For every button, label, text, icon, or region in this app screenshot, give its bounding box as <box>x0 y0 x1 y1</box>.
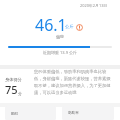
button[interactable]: 脂肪率 <box>62 106 114 120</box>
staticText: 公斤 <box>65 24 74 29</box>
button[interactable]: BMI <box>5 106 56 120</box>
staticText: 脂肪率 <box>68 111 79 116</box>
staticText: 46.1 <box>35 14 67 36</box>
button[interactable]: 身体得分 <box>0 69 120 97</box>
staticText: 身体得分 <box>5 77 22 82</box>
staticText: 分 <box>18 91 22 96</box>
staticText: 近期增重 13.9 公斤 <box>43 50 78 55</box>
staticText: 2020年2月13日 <box>80 3 108 8</box>
button[interactable]: Info <box>76 24 83 31</box>
staticText: BMI <box>11 111 18 116</box>
staticText: 75 <box>5 82 18 97</box>
staticText: 偏瘦 <box>56 34 64 39</box>
staticText: 您的体重偏低，脂肪率和肌肉率也比较低，身材偏瘦，新陈代谢较慢，营养素摄取不够，建… <box>34 69 113 95</box>
